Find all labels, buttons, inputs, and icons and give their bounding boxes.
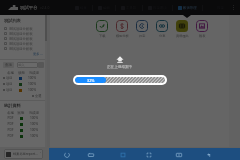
button[interactable]: Window bbox=[117, 149, 128, 160]
staticText: PDF bbox=[5, 122, 16, 126]
button[interactable]: 資料匯出 bbox=[172, 20, 192, 38]
staticText: PDF bbox=[5, 128, 16, 132]
staticText: 100% bbox=[26, 134, 42, 138]
button[interactable]: 項目 bbox=[0, 75, 47, 81]
staticText: 狀態 bbox=[16, 71, 27, 75]
button[interactable]: 編輯 bbox=[98, 2, 110, 13]
staticText: PDF bbox=[5, 134, 16, 138]
staticText: 測試項目分析表 bbox=[9, 42, 33, 46]
staticText: 32% bbox=[87, 78, 95, 83]
button[interactable]: More options bbox=[229, 3, 238, 12]
staticText: 全選 bbox=[35, 94, 42, 98]
staticText: 測試列表 bbox=[4, 18, 21, 23]
button[interactable]: 設定 bbox=[132, 20, 152, 38]
button[interactable]: 報表 bbox=[192, 20, 212, 38]
staticText: 分享 bbox=[159, 34, 166, 38]
staticText: 資料匯出 bbox=[176, 34, 189, 38]
staticText: 100% bbox=[25, 82, 39, 86]
button[interactable]: 測試項目分析表 bbox=[0, 31, 47, 36]
button[interactable]: PDF bbox=[0, 121, 47, 127]
staticText: 測試項目分析表 bbox=[9, 32, 33, 36]
button[interactable]: 帳號管理 bbox=[178, 2, 197, 13]
staticText: 項目 bbox=[6, 82, 13, 86]
staticText: 報表 bbox=[199, 34, 206, 38]
staticText: 項目 bbox=[6, 76, 13, 80]
staticText: 100% bbox=[26, 116, 42, 120]
button[interactable]: 測試項目分析表 bbox=[0, 36, 47, 41]
button[interactable]: 測試項目分析表 bbox=[0, 26, 47, 31]
staticText: 100% bbox=[26, 122, 42, 126]
button[interactable]: Undo bbox=[203, 149, 214, 160]
staticText: 測試項目分析表 bbox=[9, 37, 33, 41]
staticText: PDF bbox=[5, 116, 16, 120]
button[interactable]: 工具箱 bbox=[121, 2, 137, 13]
staticText: 完成度 bbox=[27, 71, 41, 75]
staticText: 正在上傳檔案中 bbox=[107, 65, 133, 70]
staticText: ˄ bbox=[40, 152, 41, 156]
staticText: 統計資料 bbox=[4, 103, 21, 108]
staticText: 設定 bbox=[139, 34, 146, 38]
button[interactable]: 項目 bbox=[0, 87, 47, 93]
staticText: 名稱 bbox=[5, 111, 16, 115]
button[interactable]: Folder bbox=[85, 149, 96, 160]
staticText: 100% bbox=[25, 76, 39, 80]
button[interactable]: 分享 bbox=[152, 20, 172, 38]
button[interactable]: Fullscreen bbox=[143, 149, 154, 160]
staticText: v2.4.0 bbox=[40, 5, 50, 10]
staticText: 檔案名稱report... bbox=[13, 152, 38, 156]
staticText: 模型分析 bbox=[116, 34, 129, 38]
button[interactable]: 下載 bbox=[92, 20, 112, 38]
button[interactable]: PDF bbox=[0, 127, 47, 133]
staticText: 下載 bbox=[99, 34, 106, 38]
staticText: 100% bbox=[25, 88, 39, 92]
staticText: 項目 bbox=[6, 88, 13, 92]
button[interactable]: 查詢 bbox=[5, 62, 12, 68]
button[interactable]: Refresh bbox=[61, 149, 72, 160]
staticText: 100% bbox=[26, 128, 42, 132]
staticText: 測試項目分析表 bbox=[9, 27, 33, 31]
staticText: 完成度 bbox=[26, 111, 42, 115]
button[interactable]: 模型分析 bbox=[112, 20, 132, 38]
button[interactable]: 檔案 bbox=[75, 2, 87, 13]
staticText: 輸入 bbox=[17, 63, 25, 67]
staticText: 名稱 bbox=[5, 71, 16, 75]
button[interactable]: Display bbox=[173, 149, 184, 160]
button[interactable]: PDF bbox=[0, 115, 47, 121]
button[interactable]: 更多 ... bbox=[33, 52, 43, 56]
button[interactable]: 項目 bbox=[0, 81, 47, 87]
button[interactable]: 測試項目分析表 bbox=[0, 41, 47, 46]
button[interactable]: PDF bbox=[0, 133, 47, 139]
staticText: 查詢 bbox=[5, 63, 12, 67]
staticText: 狀態 bbox=[16, 111, 26, 115]
staticText: 測試項目分析表 bbox=[9, 47, 33, 51]
staticText: 測試平台 bbox=[20, 5, 38, 11]
button[interactable]: 測試項目分析表 bbox=[0, 46, 47, 51]
button[interactable]: 檔案名稱report... bbox=[6, 149, 41, 159]
staticText: 帳號管理 bbox=[183, 6, 197, 10]
